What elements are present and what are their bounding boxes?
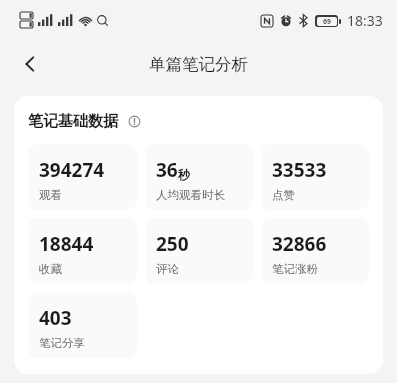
button[interactable]: 32866 — [261, 218, 369, 284]
staticText: 笔记涨粉 — [272, 262, 318, 276]
button[interactable]: 394274 — [28, 144, 137, 210]
staticText: 观看 — [39, 188, 62, 202]
staticText: 笔记分享 — [39, 336, 85, 350]
button[interactable]: 250 — [145, 218, 253, 284]
button[interactable]: 18844 — [28, 218, 137, 284]
button[interactable]: Back — [10, 44, 50, 84]
staticText: 单篇笔记分析 — [149, 54, 248, 75]
staticText: 18844 — [39, 231, 94, 257]
button[interactable]: Info — [124, 111, 144, 131]
staticText: 笔记基础数据 — [28, 112, 118, 131]
staticText: 18:33 — [347, 11, 383, 30]
staticText: 评论 — [156, 262, 179, 276]
button[interactable]: 403 — [28, 292, 137, 358]
staticText: 32866 — [272, 231, 327, 257]
staticText: 403 — [39, 305, 72, 331]
button[interactable]: 36 — [145, 144, 253, 210]
staticText: 人均观看时长 — [156, 188, 225, 202]
staticText: 秒 — [178, 167, 190, 182]
staticText: 33533 — [272, 157, 327, 183]
staticText: 69 — [323, 17, 332, 26]
staticText: 点赞 — [272, 188, 295, 202]
button[interactable]: 33533 — [261, 144, 369, 210]
staticText: 36 — [156, 157, 178, 183]
staticText: 250 — [156, 231, 189, 257]
staticText: 收藏 — [39, 262, 62, 276]
staticText: 394274 — [39, 157, 105, 183]
